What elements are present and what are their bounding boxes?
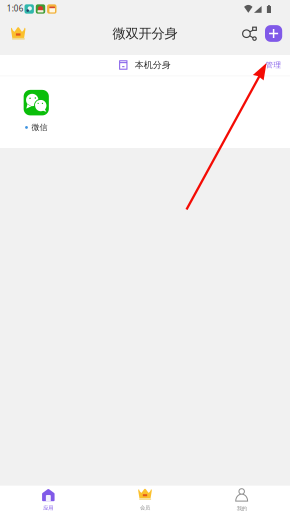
button[interactable]: 管理 [257,55,290,75]
button[interactable]: 我的 [193,486,290,516]
staticText: 会员 [140,504,150,511]
staticText: 应用 [43,505,53,511]
staticText: 微信 [31,122,47,132]
staticText: 1:06 [7,3,24,14]
staticText: 我的 [237,505,247,512]
button[interactable]: 本机分身 [0,55,290,75]
staticText: 微双开分身 [112,25,177,42]
button[interactable]: 分享 [237,19,261,48]
button[interactable]: 会员 [97,486,193,516]
button[interactable]: 微信 [0,75,72,148]
button[interactable]: 会员 [6,19,31,48]
button[interactable]: 添加分身 [265,25,282,42]
button[interactable]: 应用 [0,486,97,516]
staticText: 管理 [265,60,281,70]
staticText: 本机分身 [135,59,171,71]
